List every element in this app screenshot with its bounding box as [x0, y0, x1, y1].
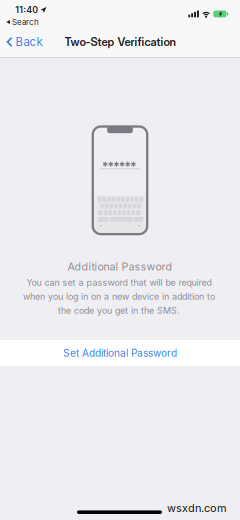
staticText: Set Additional Password — [63, 347, 177, 359]
button[interactable]: Set Additional Password — [0, 340, 240, 366]
staticText: Back — [15, 35, 42, 49]
staticText: Two-Step Verification — [64, 35, 175, 49]
staticText: Additional Password — [67, 260, 172, 273]
staticText: the code you get in the SMS. — [58, 305, 180, 316]
button[interactable]: Back to Search — [4, 15, 41, 29]
staticText: when you log in on a new device in addit… — [23, 291, 215, 302]
staticText: You can set a password that will be requ… — [26, 277, 211, 288]
staticText: wsxdn.com — [167, 501, 227, 515]
button[interactable]: Back — [3, 32, 45, 52]
staticText: 11:40 — [15, 5, 38, 15]
staticText: Search — [12, 17, 39, 27]
